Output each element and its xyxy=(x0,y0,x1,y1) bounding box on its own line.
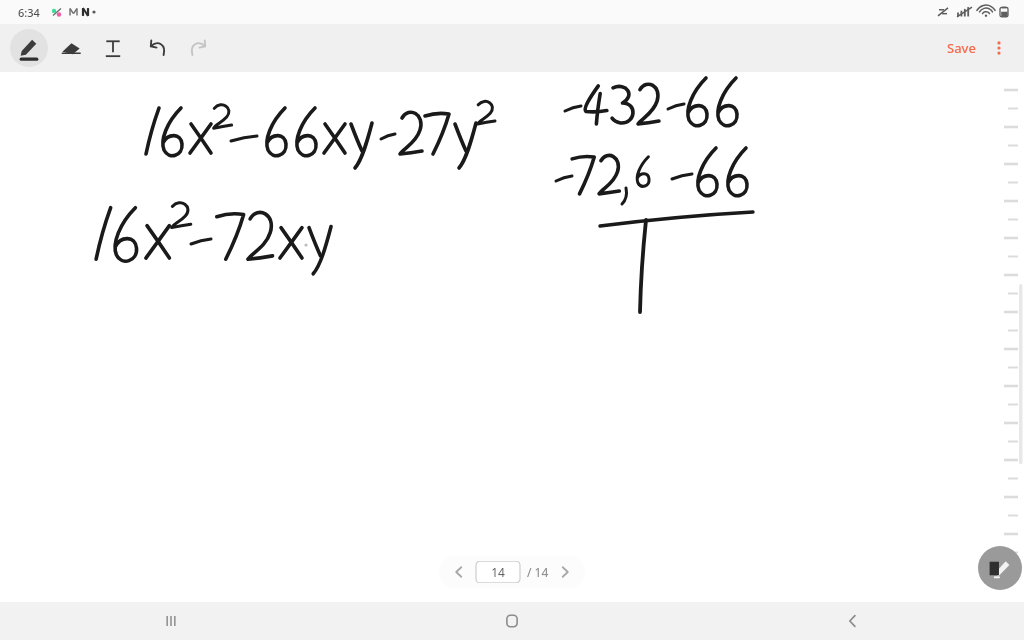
button[interactable]: Undo xyxy=(138,29,176,67)
staticText: 14 xyxy=(491,564,505,580)
staticText: Save xyxy=(947,39,976,57)
button[interactable]: Back xyxy=(829,602,877,640)
staticText: 6:34 xyxy=(18,5,40,20)
button[interactable]: Eraser xyxy=(52,29,90,67)
button[interactable]: More options xyxy=(982,31,1016,65)
button[interactable]: Home xyxy=(488,602,536,640)
button[interactable]: Edit xyxy=(978,546,1022,590)
button[interactable]: Text xyxy=(94,29,132,67)
button[interactable]: Previous page xyxy=(443,556,475,588)
button[interactable]: Save xyxy=(941,35,982,61)
button[interactable]: Next page xyxy=(549,556,581,588)
button[interactable]: Pen xyxy=(10,29,48,67)
button[interactable]: Recents xyxy=(147,602,195,640)
button[interactable]: 14 xyxy=(476,561,520,583)
button[interactable]: Redo xyxy=(180,29,218,67)
staticText: / 14 xyxy=(527,564,549,580)
